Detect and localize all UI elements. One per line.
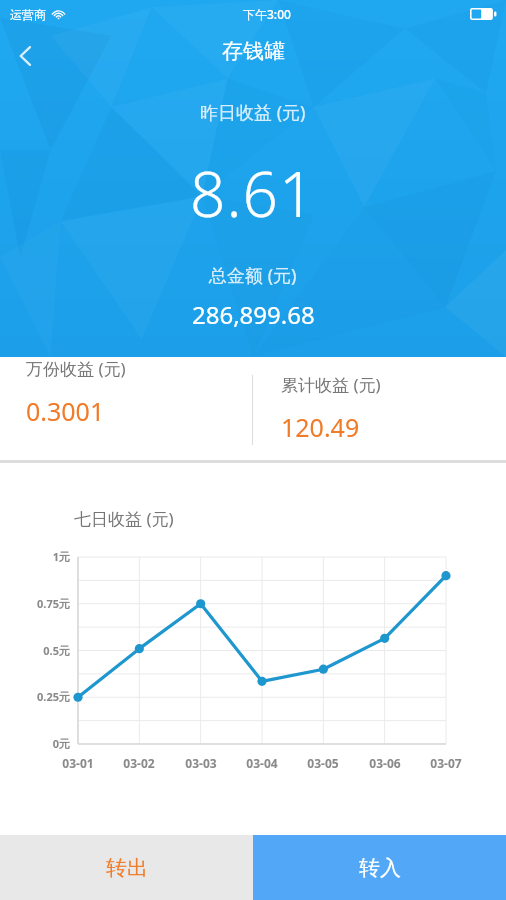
- staticText: 0元: [52, 736, 70, 751]
- staticText: 0.5元: [43, 643, 70, 658]
- staticText: 0.25元: [37, 689, 70, 704]
- staticText: 1元: [52, 549, 70, 564]
- button[interactable]: 转入: [253, 835, 506, 900]
- staticText: 万份收益 (元): [26, 357, 126, 380]
- staticText: 03-02: [123, 755, 155, 771]
- staticText: 下午3:00: [243, 6, 291, 22]
- staticText: 03-06: [369, 755, 401, 771]
- staticText: 转出: [106, 855, 148, 881]
- staticText: 总金额 (元): [209, 263, 297, 288]
- staticText: 转入: [359, 855, 401, 881]
- staticText: 03-03: [185, 755, 217, 771]
- button[interactable]: Back: [0, 30, 52, 82]
- button[interactable]: 万份收益 (元): [26, 357, 253, 428]
- button[interactable]: 转出: [0, 835, 253, 900]
- staticText: 七日收益 (元): [74, 507, 174, 530]
- staticText: 120.49: [281, 410, 360, 444]
- staticText: 03-01: [62, 755, 94, 771]
- staticText: 03-04: [246, 755, 278, 771]
- button[interactable]: 累计收益 (元): [281, 357, 506, 460]
- staticText: 03-05: [307, 755, 339, 771]
- staticText: 286,899.68: [192, 298, 315, 331]
- staticText: 03-07: [430, 755, 462, 771]
- staticText: 0.3001: [26, 394, 105, 428]
- staticText: 运营商: [10, 7, 46, 22]
- staticText: 存钱罐: [222, 38, 285, 64]
- staticText: 累计收益 (元): [281, 373, 381, 396]
- staticText: 0.75元: [37, 596, 70, 611]
- staticText: 8.61: [190, 151, 316, 235]
- staticText: 昨日收益 (元): [200, 100, 306, 125]
